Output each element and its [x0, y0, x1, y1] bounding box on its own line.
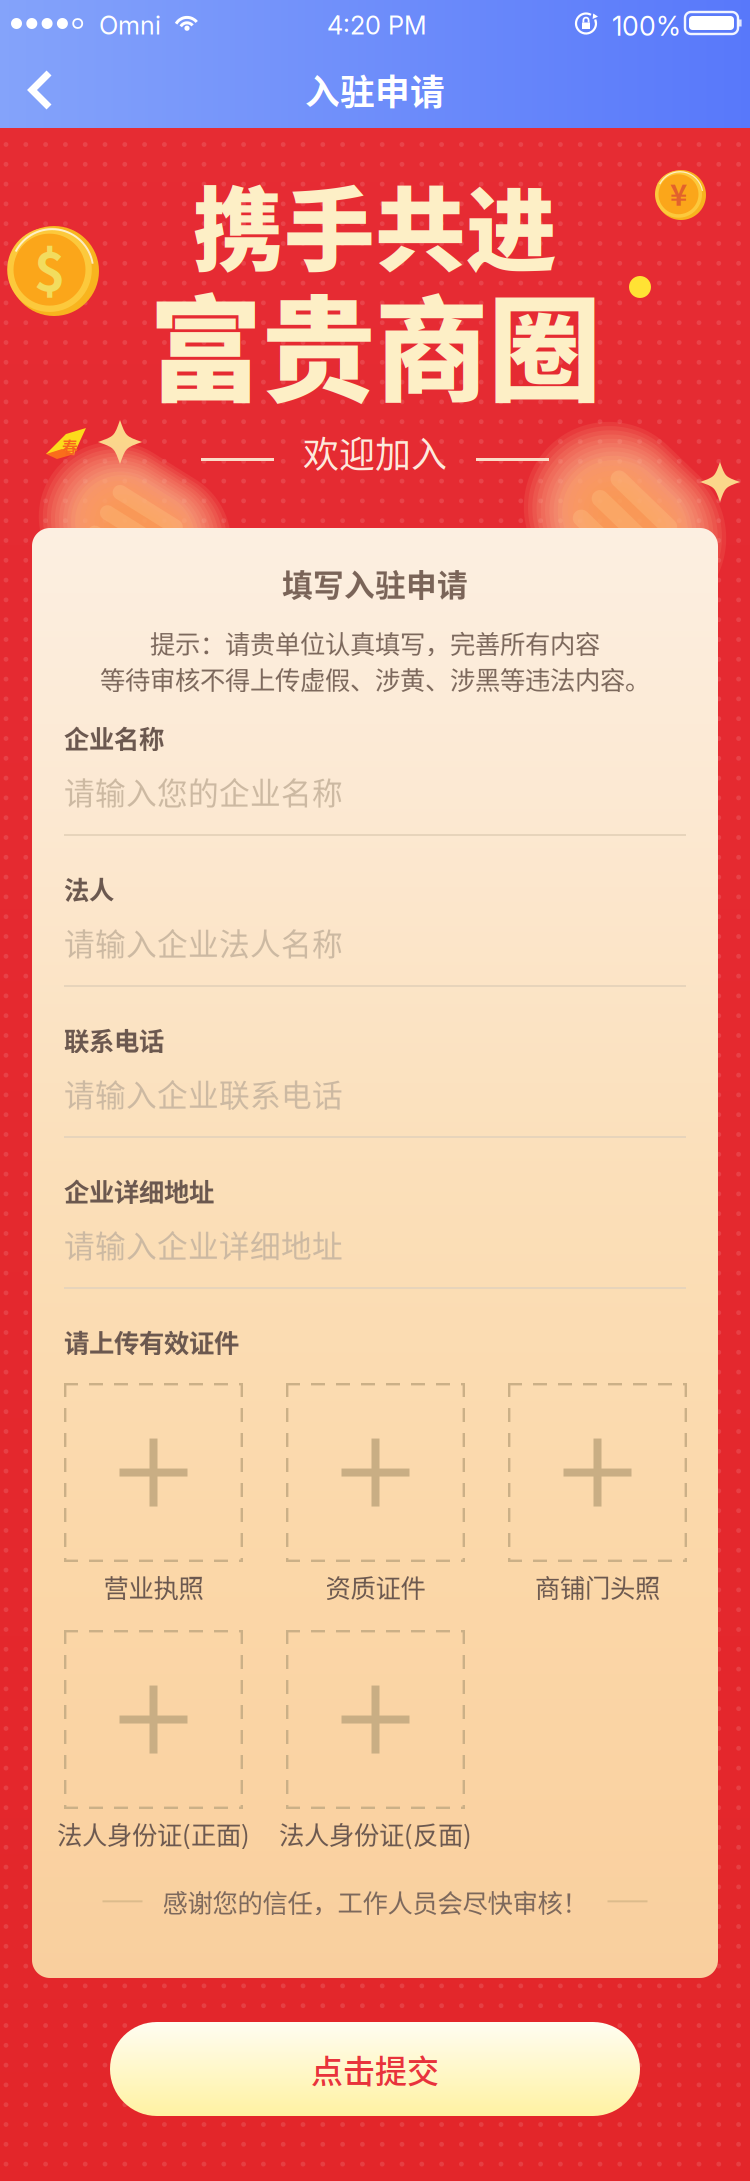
- staticText: 请上传有效证件: [64, 1323, 239, 1360]
- staticText: 法人: [64, 870, 114, 907]
- staticText: 商铺门头照: [535, 1568, 660, 1605]
- staticText: 提示：请贵单位认真填写，完善所有内容: [150, 624, 600, 661]
- button[interactable]: Back: [0, 55, 77, 125]
- staticText: 点击提交: [311, 2046, 439, 2092]
- staticText: ¥: [670, 172, 687, 214]
- staticText: 入驻申请: [305, 65, 445, 115]
- button[interactable]: 商铺门头照: [508, 1383, 687, 1610]
- staticText: 等待审核不得上传虚假、涉黄、涉黑等违法内容。: [100, 660, 650, 697]
- staticText: 4:20 PM: [327, 10, 427, 41]
- staticText: 富贵商圈: [149, 260, 601, 424]
- staticText: 请输入您的企业名称: [64, 769, 343, 813]
- staticText: 法人身份证(反面): [279, 1815, 472, 1852]
- staticText: 感谢您的信任，工作人员会尽快审核！: [162, 1883, 587, 1920]
- staticText: 春: [62, 435, 78, 458]
- button[interactable]: 营业执照: [64, 1383, 243, 1610]
- button[interactable]: 法人身份证(正面): [64, 1630, 243, 1857]
- staticText: 营业执照: [103, 1568, 203, 1605]
- button[interactable]: 资质证件: [286, 1383, 465, 1610]
- staticText: 填写入驻申请: [282, 561, 468, 605]
- button[interactable]: 法人身份证(反面): [286, 1630, 465, 1857]
- staticText: 请输入企业详细地址: [64, 1222, 343, 1266]
- staticText: 请输入企业联系电话: [64, 1071, 343, 1115]
- staticText: 联系电话: [64, 1021, 164, 1058]
- staticText: 企业名称: [64, 719, 164, 756]
- staticText: 携手共进: [193, 158, 557, 289]
- button[interactable]: 点击提交: [110, 2022, 640, 2116]
- staticText: 请输入企业法人名称: [64, 920, 343, 964]
- staticText: $: [34, 229, 65, 306]
- staticText: 欢迎加入: [303, 426, 447, 478]
- staticText: Omni: [99, 10, 161, 41]
- staticText: 100%: [612, 10, 681, 42]
- staticText: 资质证件: [325, 1568, 425, 1605]
- staticText: 法人身份证(正面): [57, 1815, 250, 1852]
- staticText: 企业详细地址: [64, 1172, 214, 1209]
